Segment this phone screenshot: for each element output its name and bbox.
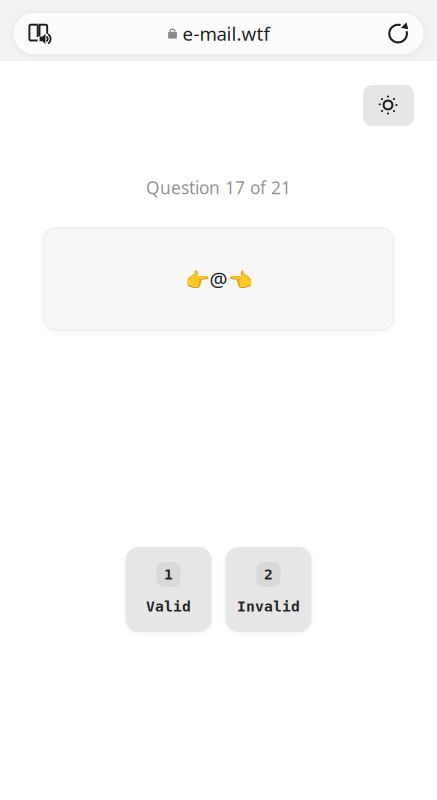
button[interactable]: e-mail.wtf — [103, 13, 333, 54]
button[interactable]: Toggle colour theme — [363, 85, 414, 126]
staticText: 👉@👈 — [184, 266, 252, 292]
staticText: Question 17 of 21 — [146, 176, 291, 199]
staticText: Valid — [146, 598, 191, 615]
staticText: e-mail.wtf — [182, 21, 269, 46]
button[interactable]: 2 — [225, 547, 311, 632]
staticText: 1 — [164, 566, 173, 583]
button[interactable]: 1 — [125, 547, 211, 632]
staticText: 2 — [264, 566, 273, 583]
staticText: Invalid — [237, 598, 300, 615]
button[interactable]: Listen to page — [13, 13, 67, 54]
button[interactable]: Reload page — [373, 13, 423, 54]
